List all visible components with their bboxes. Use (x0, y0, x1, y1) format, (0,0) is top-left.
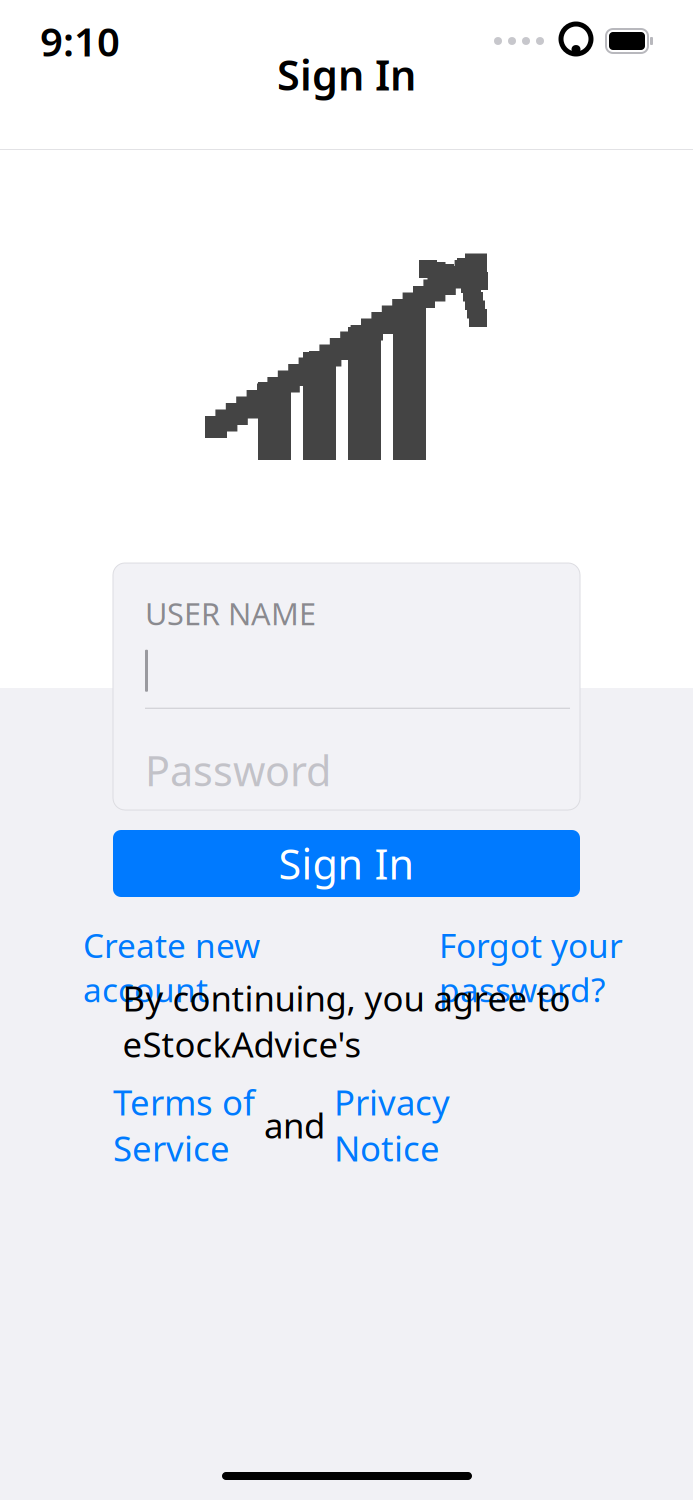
staticText: Sign In (277, 47, 416, 102)
staticText: 9:10 (40, 14, 120, 67)
staticText: Terms of Service (113, 1079, 255, 1171)
staticText: USER NAME (145, 593, 316, 634)
staticText: Sign In (278, 836, 414, 891)
staticText: Privacy Notice (334, 1079, 450, 1171)
staticText: By continuing, you agree to eStockAdvice… (122, 975, 570, 1067)
button[interactable]: Terms of Service (113, 1079, 255, 1171)
button[interactable]: Sign In (113, 830, 580, 897)
staticText: Create new account (83, 923, 260, 1011)
staticText: and (255, 1102, 334, 1148)
staticText: Forgot your password? (439, 923, 623, 1011)
staticText: Password (145, 743, 331, 798)
button[interactable]: Privacy Notice (334, 1079, 450, 1171)
button[interactable]: Forgot your password? (439, 923, 623, 1011)
button[interactable]: Create new account (83, 923, 260, 1011)
